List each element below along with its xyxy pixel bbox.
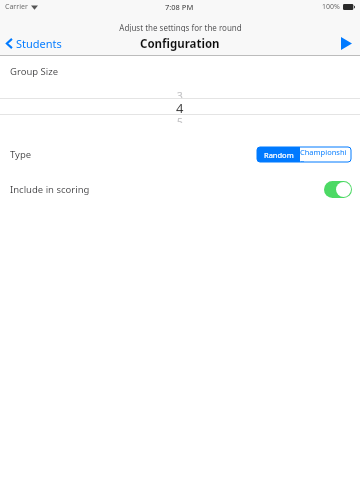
staticText: Championship: [300, 147, 351, 162]
staticText: 100%: [322, 2, 340, 12]
staticText: Type: [10, 148, 32, 161]
staticText: Students: [16, 36, 62, 51]
staticText: Include in scoring: [10, 183, 90, 196]
staticText: Adjust the settings for the round: [119, 22, 242, 32]
staticText: Carrier: [5, 2, 28, 12]
button[interactable]: Championship: [300, 147, 351, 162]
button[interactable]: Students: [0, 32, 70, 55]
button[interactable]: 3: [0, 89, 360, 123]
button[interactable]: Start round: [333, 33, 360, 54]
button[interactable]: Include in scoring toggle: [324, 181, 352, 198]
staticText: 7:08 PM: [165, 2, 194, 12]
staticText: 4: [176, 99, 184, 114]
staticText: Random: [264, 150, 294, 160]
staticText: 5: [177, 115, 183, 123]
button[interactable]: Random: [257, 147, 300, 162]
staticText: Configuration: [140, 36, 220, 52]
staticText: Group Size: [10, 65, 59, 78]
staticText: 3: [177, 89, 183, 98]
